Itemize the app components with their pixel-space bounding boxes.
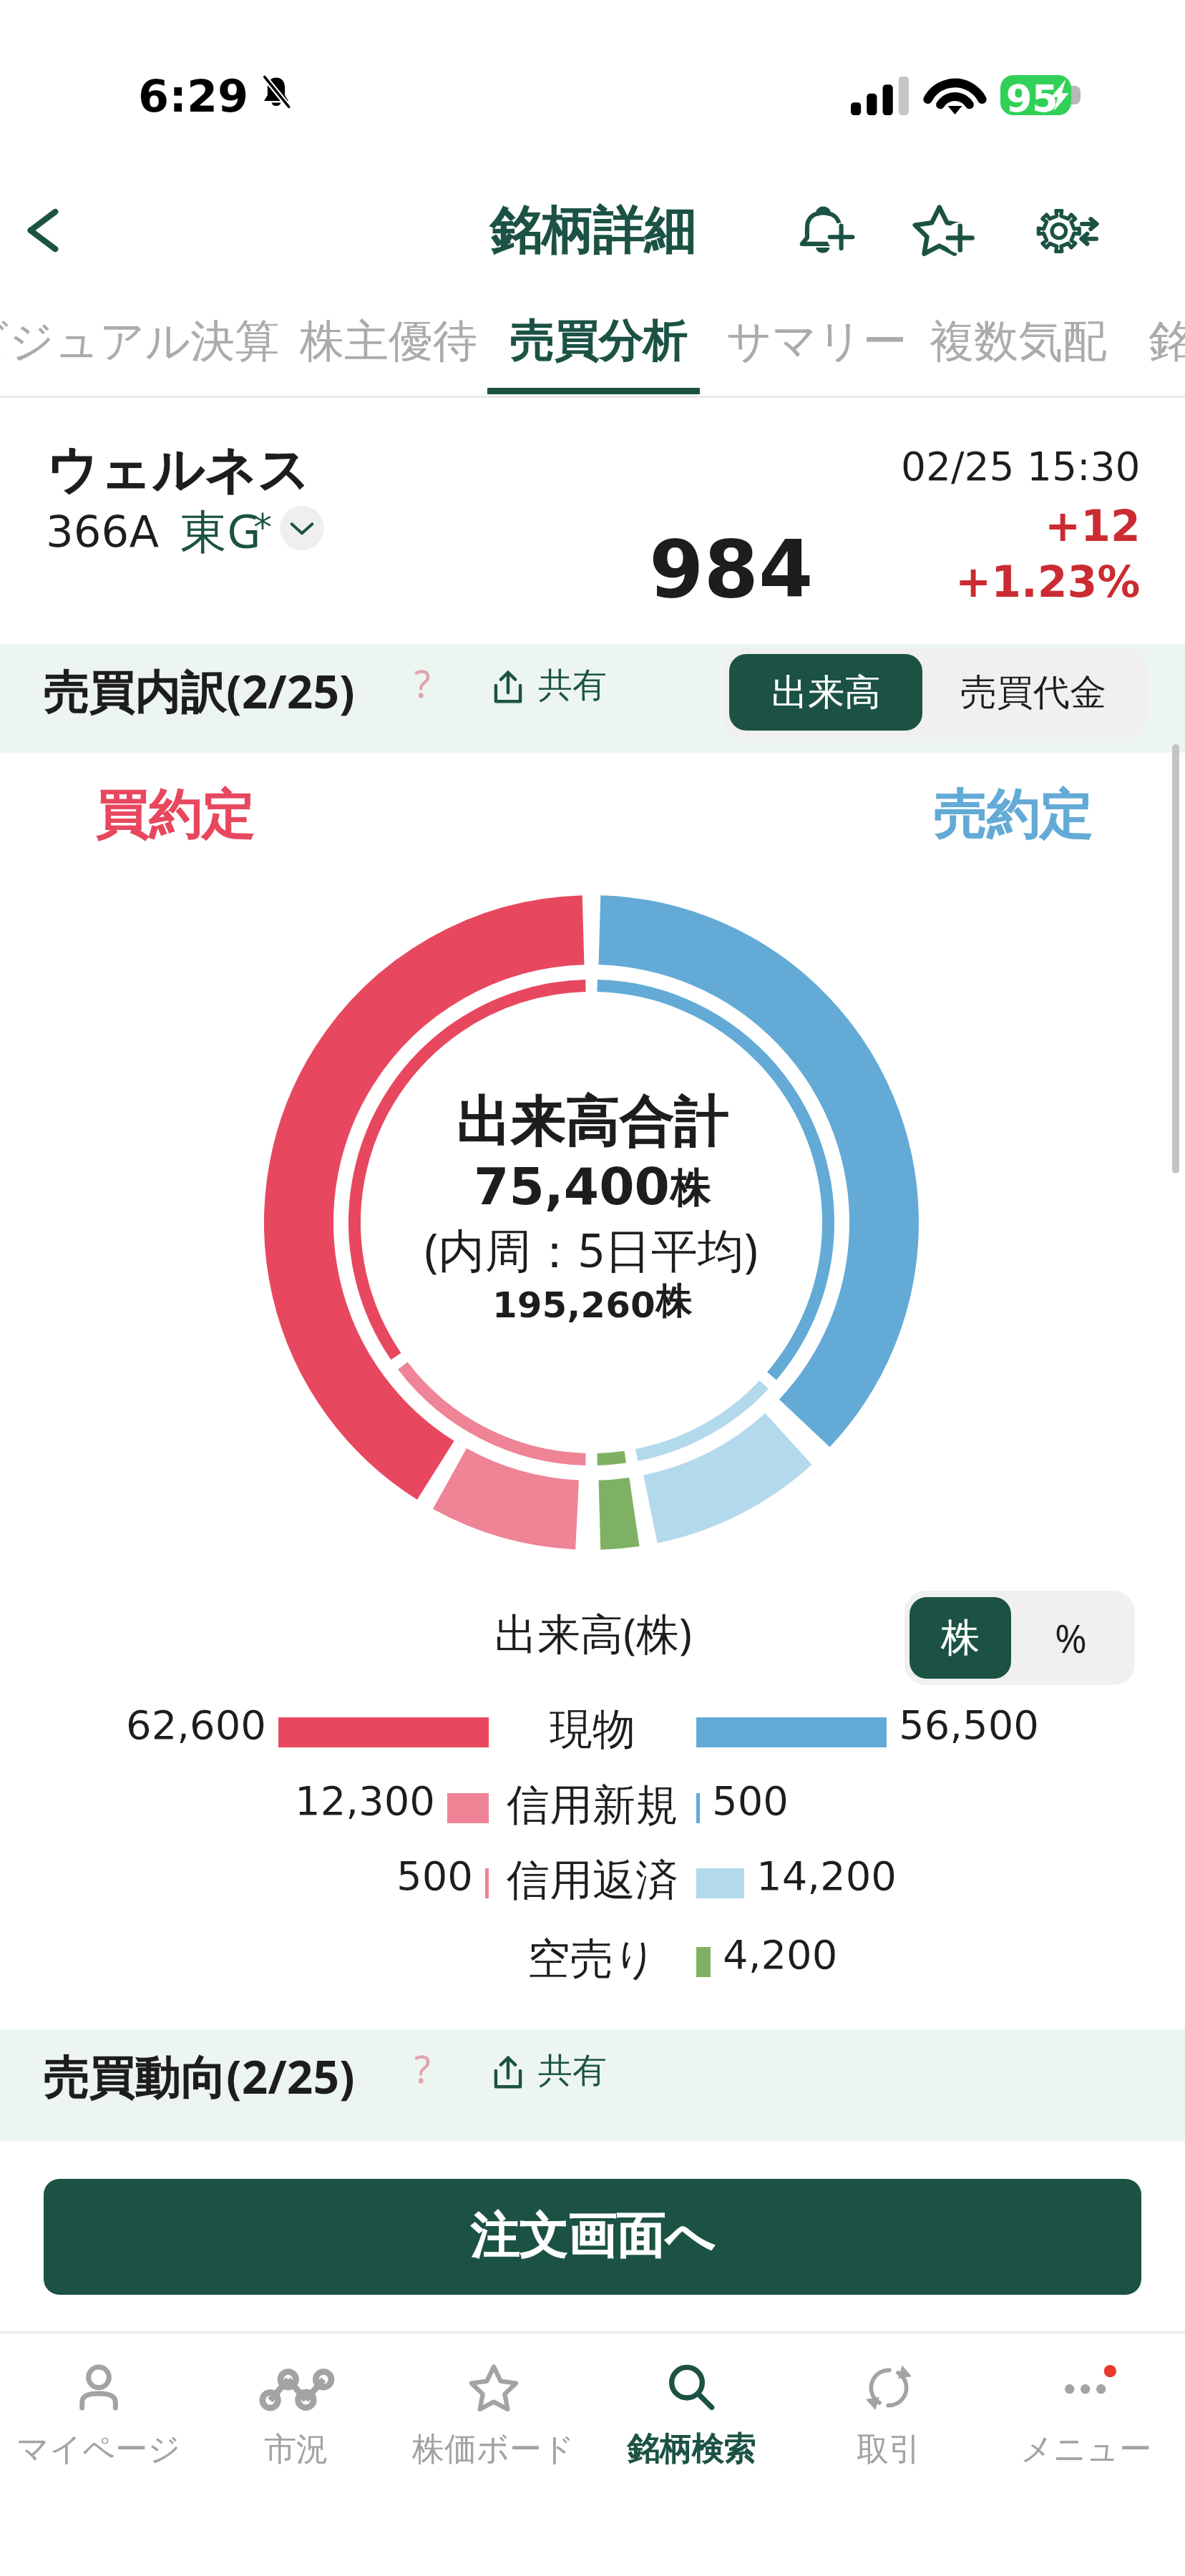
button[interactable]: % [1011,1597,1130,1679]
staticText: 62,600 [126,1702,266,1748]
staticText: 株 [655,1279,691,1324]
button[interactable]: マイページ [0,2333,197,2576]
staticText: 銘柄詳細 [489,199,696,264]
staticText: ビジュアル決算 [0,313,280,369]
button[interactable]: Settings [1022,187,1109,275]
button[interactable]: 市況 [197,2333,395,2576]
button[interactable]: 共有 [485,654,607,720]
button[interactable]: Expand [280,506,324,550]
staticText: 株 [670,1163,710,1214]
button[interactable]: Back [4,191,82,270]
staticText: 共有 [538,2049,607,2092]
staticText: 出来高合計 [456,1088,728,1157]
button[interactable]: 出来高 [729,654,922,731]
staticText: +1.23% [955,557,1141,607]
staticText: % [1055,1611,1087,1664]
staticText: ウェルネス [46,439,310,504]
button[interactable]: 共有 [485,2039,607,2105]
staticText: 信用返済 [507,1853,678,1908]
button[interactable]: 売買代金 [922,654,1144,731]
button[interactable]: 取引 [790,2333,987,2576]
staticText: 買約定 [95,782,254,849]
staticText: 95 [1006,77,1058,121]
staticText: (内周：5日平均) [424,1218,759,1282]
staticText: 56,500 [899,1702,1039,1748]
button[interactable]: Help [392,653,452,713]
staticText: 銘柄 [1149,313,1185,369]
staticText: * [253,506,272,550]
button[interactable]: Add alert [781,187,869,275]
staticText: 500 [712,1777,789,1824]
staticText: 現物 [550,1702,635,1757]
staticText: 株主優待 [300,313,477,369]
staticText: 銘柄検索 [627,2429,756,2470]
button[interactable]: Help [392,2038,452,2098]
staticText: 売約定 [933,782,1092,849]
staticText: 市況 [264,2429,328,2470]
staticText: 75,400 [474,1157,670,1216]
staticText: 出来高 [771,670,881,716]
staticText: 株 [941,1614,980,1662]
staticText: 信用新規 [507,1778,678,1833]
staticText: 売買分析 [509,313,687,369]
staticText: 共有 [538,664,607,707]
button[interactable]: 株主優待 [275,286,487,397]
staticText: 取引 [857,2429,921,2470]
staticText: +12 [1045,501,1141,551]
button[interactable]: 注文画面へ [44,2179,1141,2295]
staticText: 6:29 [138,70,249,122]
staticText: 注文画面へ [470,2206,715,2268]
staticText: 195,260 [492,1284,655,1326]
button[interactable]: 株 [910,1597,1011,1679]
staticText: 複数気配 [930,313,1107,369]
button[interactable]: 複数気配 [905,286,1117,397]
staticText: 14,200 [756,1853,897,1899]
staticText: 東G [180,499,261,562]
staticText: 出来高(株) [494,1604,692,1662]
button[interactable]: 銘柄 [1124,286,1185,397]
staticText: マイページ [16,2429,181,2470]
staticText: 366A [46,506,160,557]
staticText: メニュー [1020,2429,1152,2470]
staticText: 売買代金 [960,670,1106,716]
staticText: 500 [396,1853,473,1899]
staticText: 空売り [527,1932,658,1986]
staticText: 売買動向(2/25) [43,2045,355,2107]
staticText: ? [414,2043,431,2094]
button[interactable]: メニュー [987,2333,1185,2576]
button[interactable]: Add to favorites [900,187,987,275]
staticText: ? [414,658,431,708]
staticText: 売買内訳(2/25) [43,660,355,722]
button[interactable]: 株価ボード [395,2333,592,2576]
staticText: サマリー [726,313,907,369]
button[interactable]: 銘柄検索 [592,2333,790,2576]
staticText: 12,300 [295,1777,435,1824]
staticText: 4,200 [723,1931,838,1978]
staticText: 984 [649,524,814,615]
button[interactable]: サマリー [702,286,914,397]
button[interactable]: 売買分析 [485,286,697,397]
staticText: 株価ボード [412,2429,575,2470]
staticText: 02/25 15:30 [901,444,1141,489]
button[interactable]: ビジュアル決算 [0,286,273,397]
